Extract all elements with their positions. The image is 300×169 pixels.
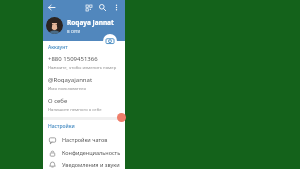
staticText: Настройки xyxy=(48,123,75,130)
button[interactable]: @Roqayajannat xyxy=(48,76,121,92)
staticText: в сети xyxy=(67,28,81,34)
button[interactable]: QR code xyxy=(83,2,94,13)
staticText: Уведомления и звуки xyxy=(62,161,120,168)
staticText: Конфиденциальность xyxy=(62,149,121,156)
staticText: Аккаунт xyxy=(48,44,68,51)
staticText: О себе xyxy=(48,97,68,105)
staticText: @Roqayajannat xyxy=(48,76,93,84)
staticText: Нажмите, чтобы изменить номер телефона xyxy=(48,65,121,71)
staticText: Имя пользователя xyxy=(48,86,86,92)
staticText: +880 1509451366 xyxy=(48,55,98,63)
button[interactable]: Back xyxy=(46,2,57,13)
button[interactable]: Roqaya Jannat xyxy=(46,17,122,34)
button[interactable]: Уведомления и звуки xyxy=(43,159,125,169)
button[interactable]: Change profile photo xyxy=(103,34,117,48)
button[interactable]: О себе xyxy=(48,97,121,113)
button[interactable]: Настройки чатов xyxy=(43,133,125,146)
button[interactable]: Action xyxy=(117,113,126,122)
button[interactable]: +880 1509451366 xyxy=(48,55,121,71)
staticText: Roqaya Jannat xyxy=(67,18,114,27)
button[interactable]: Конфиденциальность xyxy=(43,146,125,159)
button[interactable]: Search xyxy=(97,2,108,13)
staticText: Настройки чатов xyxy=(62,136,108,143)
button[interactable]: More options xyxy=(111,2,122,13)
staticText: Напишите немного о себе xyxy=(48,107,102,113)
